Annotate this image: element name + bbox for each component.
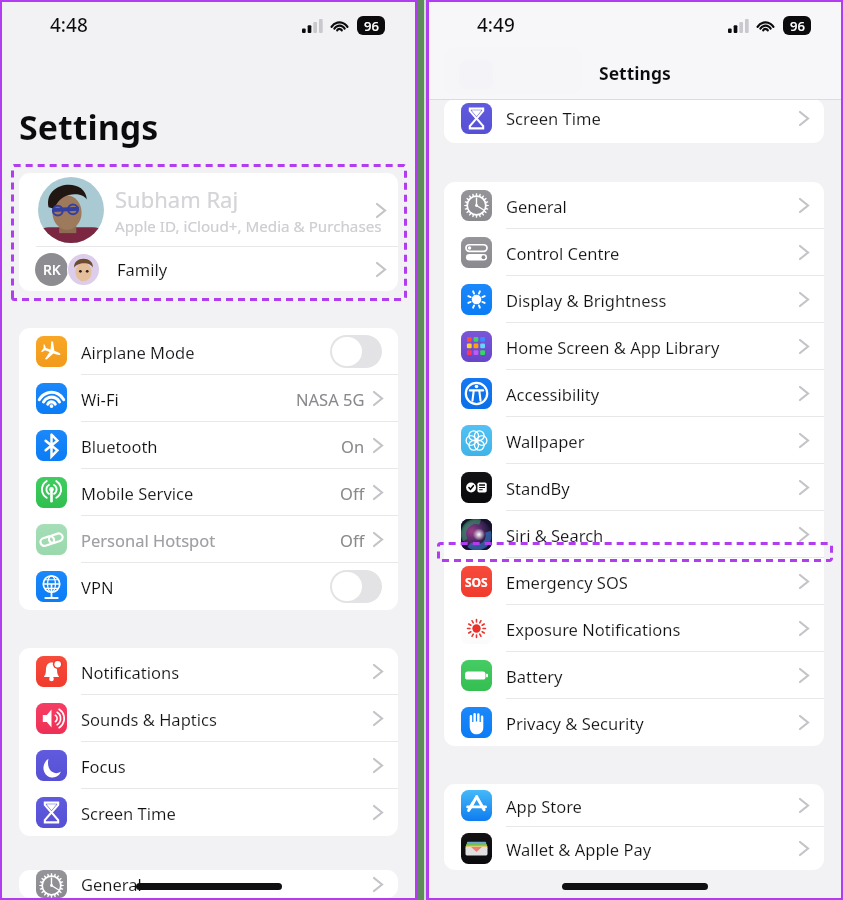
staticText: Wi-Fi [81, 388, 119, 410]
staticText: Family [117, 258, 168, 280]
button[interactable]: RK [19, 247, 398, 291]
staticText: Airplane Mode [81, 341, 195, 363]
staticText: General [506, 195, 567, 217]
staticText: Privacy & Security [506, 712, 644, 734]
button[interactable]: General [19, 870, 398, 898]
staticText: Bluetooth [81, 435, 158, 457]
staticText: Wallet & Apple Pay [506, 838, 652, 860]
staticText: 96 [364, 17, 379, 35]
staticText: Exposure Notifications [506, 618, 681, 640]
staticText: Personal Hotspot [81, 529, 216, 551]
button[interactable]: Wi-Fi [19, 375, 398, 422]
staticText: Focus [81, 755, 126, 777]
staticText: NASA 5G [296, 388, 365, 410]
staticText: StandBy [506, 477, 570, 499]
button[interactable]: Wallpaper [444, 417, 824, 464]
button[interactable]: Home Screen & App Library [444, 323, 824, 370]
staticText: Screen Time [81, 802, 176, 824]
staticText: Display & Brightness [506, 289, 667, 311]
button[interactable]: Screen Time [444, 99, 824, 140]
button[interactable]: Airplane Mode [19, 328, 398, 375]
button[interactable]: Bluetooth [19, 422, 398, 469]
staticText: Wallpaper [506, 430, 585, 452]
button[interactable]: SOS [444, 558, 824, 605]
button[interactable]: Sounds & Haptics [19, 695, 398, 742]
button[interactable]: Wallet & Apple Pay [444, 827, 824, 870]
staticText: Home Screen & App Library [506, 336, 720, 358]
staticText: Settings [599, 61, 671, 85]
staticText: On [341, 435, 365, 457]
staticText: Off [340, 482, 365, 504]
button[interactable]: Screen Time [19, 789, 398, 836]
staticText: General [81, 873, 142, 895]
staticText: Sounds & Haptics [81, 708, 217, 730]
button[interactable]: Display & Brightness [444, 276, 824, 323]
staticText: Subham Raj [115, 184, 239, 214]
staticText: RK [43, 260, 61, 279]
button[interactable]: Battery [444, 652, 824, 699]
staticText: 96 [790, 17, 805, 35]
staticText: Accessibility [506, 383, 600, 405]
staticText: 4:49 [477, 12, 515, 38]
staticText: Battery [506, 665, 563, 687]
button[interactable]: Notifications [19, 648, 398, 695]
button[interactable]: Mobile Service [19, 469, 398, 516]
staticText: Settings [19, 104, 159, 150]
staticText: Control Centre [506, 242, 620, 264]
staticText: Screen Time [506, 107, 601, 129]
staticText: 4:48 [50, 12, 88, 38]
button[interactable]: Privacy & Security [444, 699, 824, 746]
staticText: App Store [506, 795, 582, 817]
button[interactable]: VPN [19, 563, 398, 610]
button[interactable]: Siri & Search [444, 511, 824, 558]
button[interactable]: Control Centre [444, 229, 824, 276]
button[interactable]: General [444, 182, 824, 229]
button[interactable]: StandBy [444, 464, 824, 511]
staticText: Mobile Service [81, 482, 194, 504]
button[interactable]: Exposure Notifications [444, 605, 824, 652]
button[interactable]: Personal Hotspot [19, 516, 398, 563]
button[interactable]: Subham Raj [19, 173, 398, 247]
staticText: VPN [81, 576, 114, 598]
staticText: Emergency SOS [506, 571, 628, 593]
button[interactable]: Focus [19, 742, 398, 789]
button[interactable]: Accessibility [444, 370, 824, 417]
staticText: SOS [465, 574, 488, 590]
staticText: Notifications [81, 661, 180, 683]
staticText: Siri & Search [506, 524, 604, 546]
staticText: Off [340, 529, 365, 551]
button[interactable]: App Store [444, 784, 824, 827]
staticText: Apple ID, iCloud+, Media & Purchases [115, 216, 382, 237]
